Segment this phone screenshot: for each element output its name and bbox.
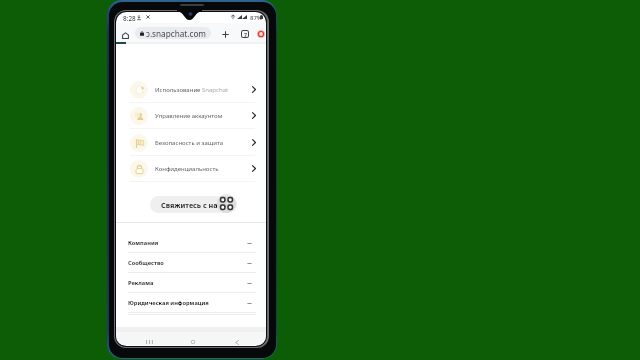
button[interactable]: Управление аккаунтом [116,102,266,129]
button[interactable]: Юридическая информация [116,293,266,313]
staticText: Компания [128,239,159,247]
staticText: Управление аккаунтом [155,112,223,120]
staticText: ɔ.snapchat.com [146,28,207,39]
staticText: Использование [155,86,202,94]
button[interactable]: Back [231,336,243,346]
button[interactable]: Stop recording [255,28,266,40]
staticText: Сообщество [128,259,164,267]
button[interactable]: New tab [219,28,231,40]
staticText: 8:28 [123,14,136,23]
button[interactable]: Свяжитесь с на [150,196,237,213]
button[interactable]: Компания [116,233,266,253]
button[interactable]: Home [119,29,131,41]
button[interactable]: ɔ.snapchat.com [135,27,211,39]
staticText: Конфиденциальность [155,165,219,173]
button[interactable]: Конфиденциальность [116,155,266,182]
staticText: Свяжитесь с на [161,200,218,210]
button[interactable]: Recents [143,336,155,346]
staticText: Юридическая информация [128,299,209,307]
staticText: Snapchat [202,86,229,94]
staticText: 87% [250,14,262,22]
button[interactable]: Использование [116,76,266,103]
button[interactable]: Сообщество [116,253,266,273]
staticText: Реклама [128,279,154,287]
button[interactable]: Tabs [239,28,251,40]
button[interactable]: Безопасность и защита [116,129,266,156]
staticText: 7 [244,31,247,37]
staticText: Безопасность и защита [155,139,224,147]
button[interactable]: Home [187,336,199,346]
button[interactable]: Реклама [116,273,266,293]
